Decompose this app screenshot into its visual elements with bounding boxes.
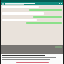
button[interactable] [33,16,62,18]
button[interactable] [29,9,62,11]
button[interactable] [2,62,62,63]
button[interactable]: Contact avatar [1,2,63,5]
